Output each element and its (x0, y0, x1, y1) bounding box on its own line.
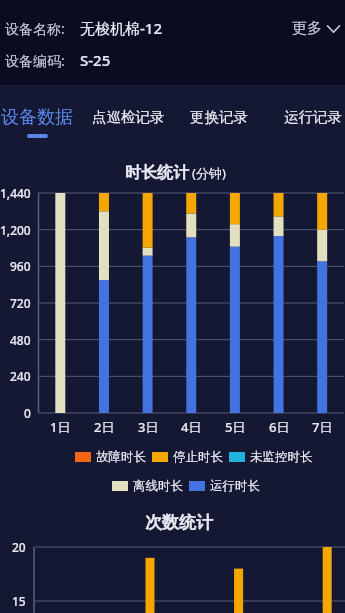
staticText: 3日 (138, 418, 159, 434)
button[interactable]: 更换记录 (187, 108, 251, 134)
staticText: 设备编码: (5, 51, 65, 70)
button[interactable]: 点巡检记录 (89, 108, 168, 134)
staticText: 更多 (292, 19, 322, 38)
staticText: 时长统计 (125, 163, 189, 183)
staticText: 点巡检记录 (92, 108, 165, 126)
staticText: S-25 (80, 50, 111, 70)
staticText: 480 (10, 332, 31, 348)
staticText: 更换记录 (190, 108, 248, 126)
staticText: 0 (24, 405, 31, 421)
staticText: 1,200 (0, 222, 31, 238)
staticText: 6日 (269, 418, 290, 434)
staticText: 设备数据 (1, 106, 73, 129)
staticText: 故障时长 (96, 449, 146, 465)
staticText: 720 (10, 295, 31, 311)
staticText: 960 (10, 258, 31, 274)
staticText: 次数统计 (145, 512, 213, 533)
staticText: 设备名称: (5, 19, 65, 38)
staticText: 无梭机棉-12 (80, 18, 162, 38)
button[interactable]: 停止时长 (152, 449, 223, 465)
button[interactable]: 故障时长 (75, 449, 146, 465)
staticText: 停止时长 (173, 449, 223, 465)
staticText: 运行时长 (210, 478, 260, 494)
staticText: 7日 (312, 418, 333, 434)
staticText: 20 (12, 539, 26, 555)
button[interactable]: 运行记录 (281, 108, 345, 134)
button[interactable]: 运行时长 (189, 478, 260, 494)
staticText: 4日 (181, 418, 202, 434)
button[interactable]: 更多 (289, 16, 343, 41)
staticText: 2日 (94, 418, 115, 434)
button[interactable]: 未监控时长 (229, 449, 313, 465)
staticText: 离线时长 (133, 478, 183, 494)
staticText: 5日 (225, 418, 246, 434)
staticText: (分钟) (192, 164, 226, 182)
staticText: 未监控时长 (250, 449, 313, 465)
staticText: 运行记录 (284, 108, 342, 126)
staticText: 1日 (50, 418, 71, 434)
staticText: 240 (10, 368, 31, 384)
staticText: 1,440 (0, 185, 31, 201)
staticText: 15 (12, 593, 26, 609)
button[interactable]: 设备数据 (0, 104, 75, 138)
button[interactable]: 离线时长 (112, 478, 183, 494)
